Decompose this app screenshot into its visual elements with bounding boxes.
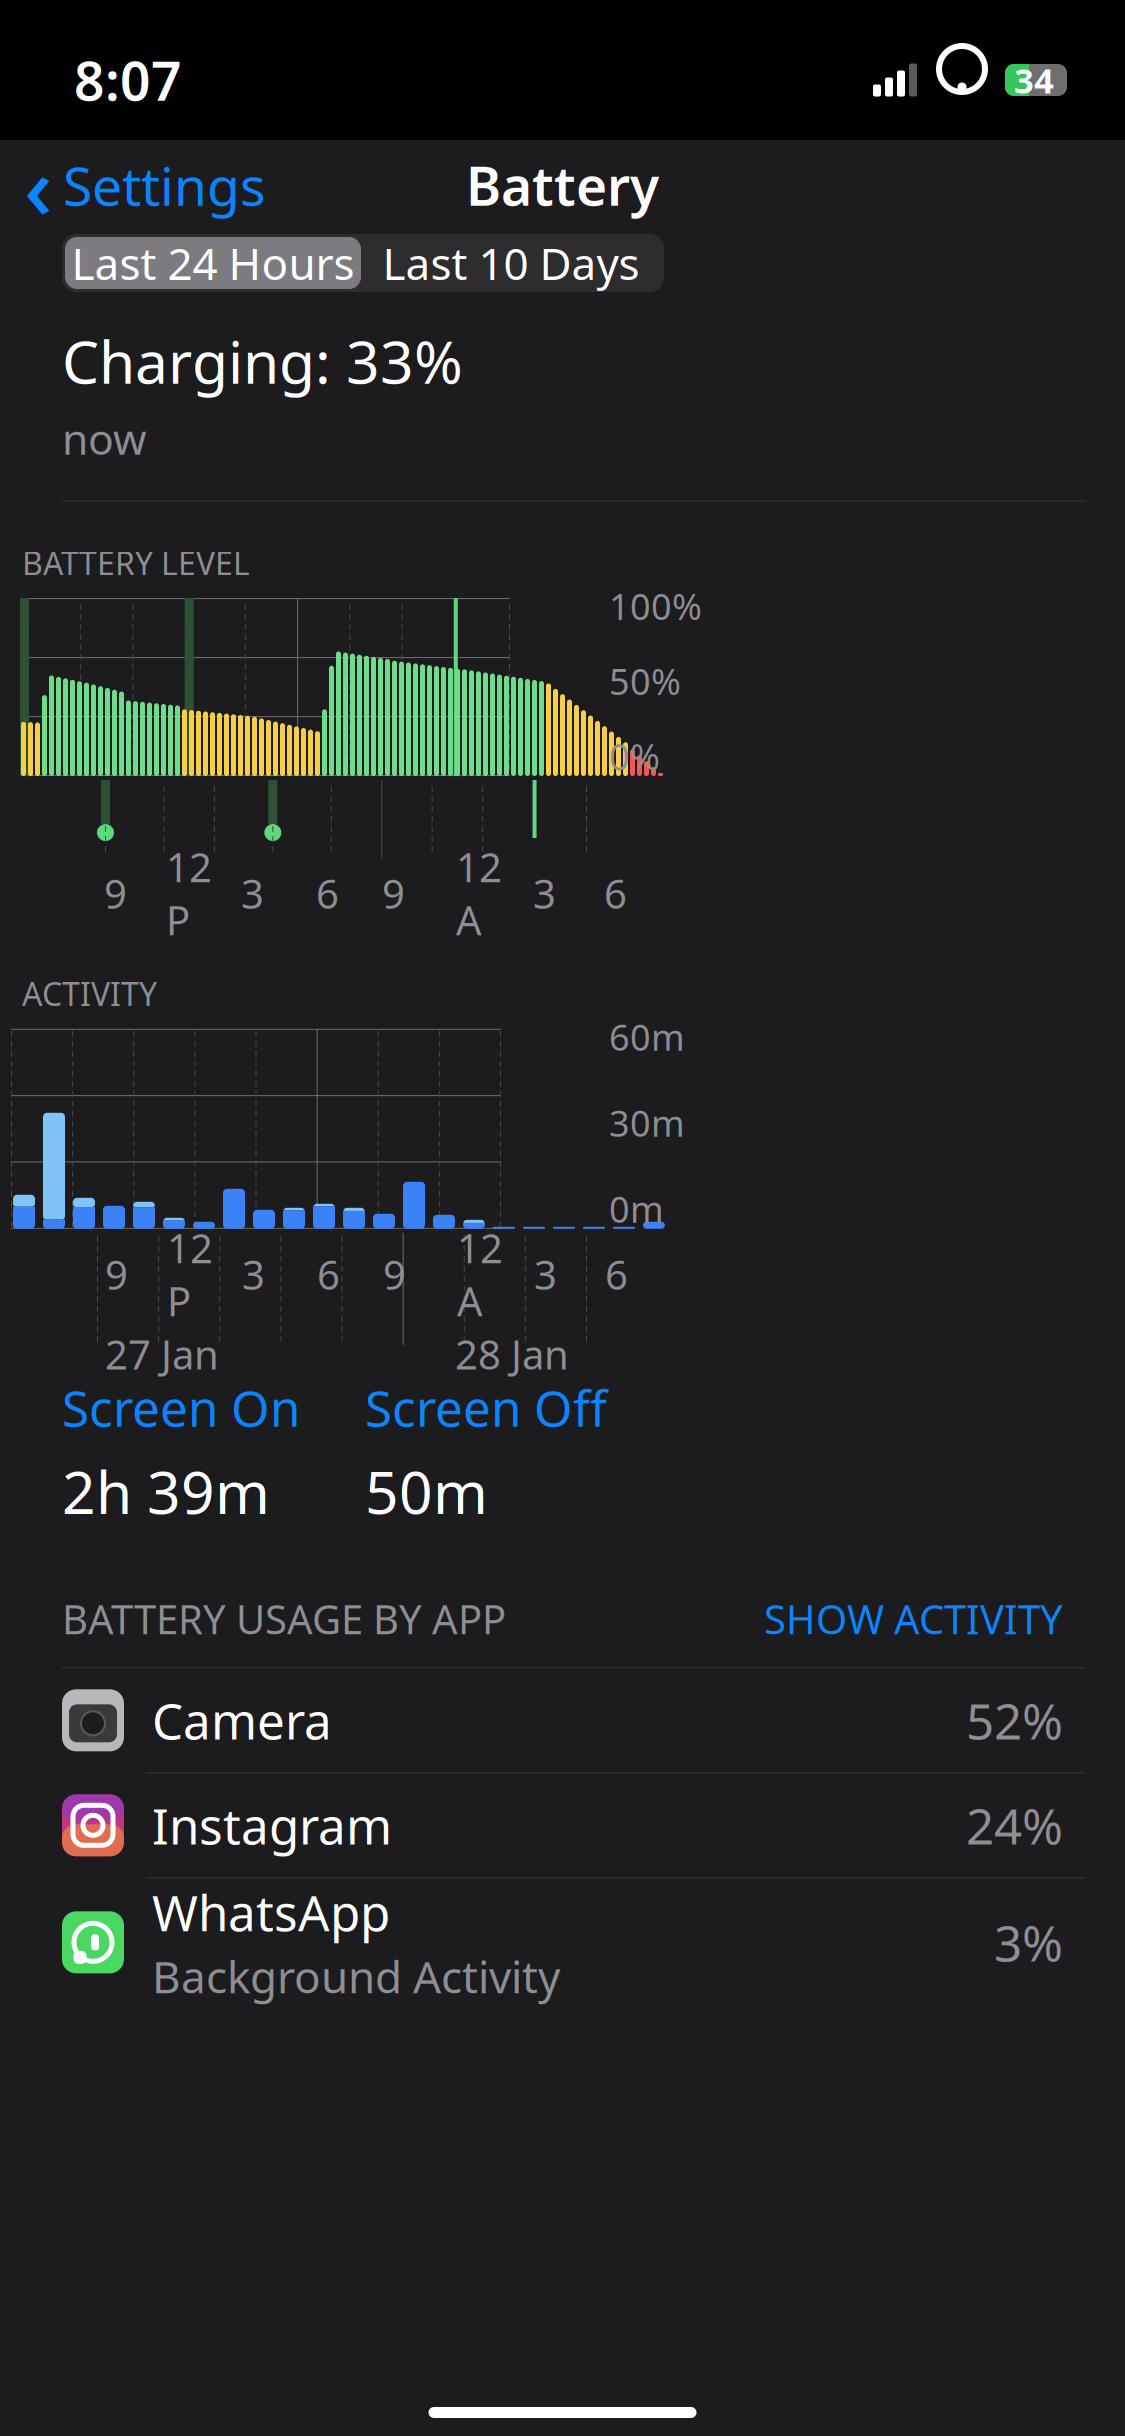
staticText: 8:07: [74, 45, 182, 115]
staticText: Camera: [152, 1688, 332, 1753]
staticText: 24%: [966, 1793, 1063, 1858]
staticText: 100%: [609, 582, 702, 630]
staticText: 50%: [609, 657, 681, 705]
staticText: 12 A: [457, 1221, 503, 1327]
staticText: 60m: [609, 1013, 685, 1061]
staticText: 9: [105, 1248, 128, 1301]
staticText: 50m: [365, 1452, 488, 1530]
button[interactable]: Last 24 Hours: [65, 237, 361, 289]
staticText: 12 A: [456, 840, 502, 946]
staticText: BATTERY USAGE BY APP: [62, 1592, 506, 1645]
button[interactable]: ‹: [0, 119, 266, 251]
staticText: Background Activity: [152, 1947, 560, 2005]
button[interactable]: WhatsApp: [0, 1878, 1125, 2006]
staticText: 6: [604, 867, 627, 920]
staticText: ‹: [24, 127, 53, 243]
staticText: now: [62, 410, 147, 467]
staticText: Settings: [63, 150, 266, 220]
staticText: 0m: [609, 1185, 664, 1233]
staticText: SHOW ACTIVITY: [764, 1592, 1063, 1645]
staticText: 6: [316, 867, 339, 920]
staticText: Instagram: [152, 1793, 392, 1858]
staticText: 3: [241, 867, 264, 920]
button[interactable]: Camera: [0, 1668, 1125, 1772]
staticText: 12 P: [166, 840, 212, 946]
staticText: Screen Off: [365, 1375, 607, 1440]
staticText: 9: [383, 1248, 406, 1301]
staticText: 28 Jan: [455, 1327, 569, 1380]
staticText: 9: [104, 867, 127, 920]
button[interactable]: Last 10 Days: [361, 237, 661, 289]
staticText: 3: [242, 1248, 265, 1301]
staticText: Charging: 33%: [62, 322, 463, 400]
staticText: 3: [534, 1248, 557, 1301]
staticText: 27 Jan: [105, 1327, 219, 1380]
staticText: 6: [605, 1248, 628, 1301]
staticText: 9: [382, 867, 405, 920]
staticText: 34: [1014, 57, 1054, 103]
button[interactable]: SHOW ACTIVITY: [764, 1592, 1063, 1645]
button[interactable]: Instagram: [0, 1773, 1125, 1877]
staticText: Battery: [466, 150, 659, 220]
staticText: Last 10 Days: [382, 234, 639, 292]
staticText: WhatsApp: [152, 1879, 390, 1945]
staticText: 12 P: [167, 1221, 213, 1327]
staticText: 6: [317, 1248, 340, 1301]
staticText: Last 24 Hours: [71, 234, 354, 292]
staticText: ACTIVITY: [22, 972, 157, 1015]
staticText: 3: [533, 867, 556, 920]
staticText: Screen On: [62, 1375, 300, 1440]
staticText: 52%: [966, 1688, 1063, 1753]
staticText: 3%: [994, 1910, 1063, 1975]
staticText: 2h 39m: [62, 1452, 270, 1530]
staticText: 30m: [609, 1099, 685, 1147]
staticText: BATTERY LEVEL: [22, 542, 250, 584]
staticText: 0%: [609, 732, 660, 780]
